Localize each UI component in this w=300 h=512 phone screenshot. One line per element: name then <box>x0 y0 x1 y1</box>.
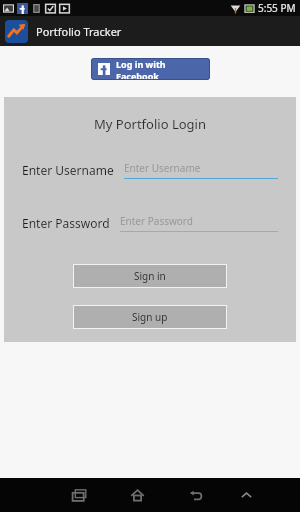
staticText: My Portfolio Login <box>4 115 296 133</box>
button[interactable]: Home <box>116 478 158 512</box>
button[interactable]: Sign up <box>74 306 226 328</box>
staticText: Enter Password <box>120 214 193 228</box>
staticText: Enter Password <box>22 215 110 231</box>
staticText: Enter Username <box>124 161 201 175</box>
button[interactable]: Expand <box>228 478 264 512</box>
button[interactable]: Back <box>174 478 216 512</box>
staticText: Sign up <box>132 310 168 324</box>
staticText: Enter Username <box>22 162 114 178</box>
button[interactable]: Sign in <box>74 265 226 287</box>
staticText: Log in with Facebook <box>116 58 203 80</box>
button[interactable]: Log in with Facebook <box>91 58 210 80</box>
button[interactable]: Enter Password <box>120 214 278 232</box>
staticText: 5:55 PM <box>258 1 296 15</box>
staticText: Sign in <box>134 269 166 283</box>
button[interactable]: Recent apps <box>58 478 100 512</box>
staticText: Portfolio Tracker <box>36 24 122 39</box>
button[interactable]: Enter Username <box>124 161 278 179</box>
